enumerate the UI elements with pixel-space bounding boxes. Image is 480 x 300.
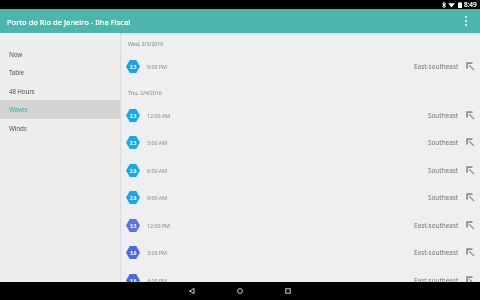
staticText: 3.3	[130, 223, 137, 229]
button[interactable]: 2.6	[120, 184, 480, 211]
staticText: 2.3	[130, 113, 137, 119]
staticText: 4:00 PM	[147, 277, 167, 282]
staticText: Now	[9, 50, 23, 59]
staticText: Southeast	[428, 193, 459, 202]
button[interactable]: Back	[168, 282, 216, 300]
staticText: 2.6	[130, 168, 137, 174]
staticText: East-southeast	[414, 248, 459, 257]
button[interactable]: Home	[216, 282, 264, 300]
button[interactable]: Recent apps	[264, 282, 312, 300]
other: Wave direction	[466, 221, 475, 230]
button[interactable]: Waves	[0, 100, 120, 119]
staticText: 48 Hours	[9, 87, 35, 96]
staticText: 8:49	[464, 0, 477, 9]
button[interactable]: 2.6	[120, 157, 480, 184]
other: Wave direction	[466, 138, 475, 147]
staticText: Southeast	[428, 138, 459, 147]
staticText: Wed, 2/3/2016	[128, 40, 164, 47]
staticText: 12:00 AM	[147, 112, 171, 119]
staticText: 3:00 PM	[147, 249, 167, 256]
button[interactable]: Now	[0, 45, 120, 63]
other: Wave direction	[466, 111, 475, 120]
button[interactable]: 3.3	[120, 212, 480, 239]
staticText: Winds	[9, 124, 27, 133]
staticText: 3:00 AM	[147, 139, 168, 146]
other: Wave direction	[466, 166, 475, 175]
button[interactable]: 48 Hours	[0, 82, 120, 100]
button[interactable]: Table	[0, 63, 120, 82]
button[interactable]: More options	[452, 9, 480, 33]
staticText: East-southeast	[414, 276, 459, 282]
staticText: 9:00 AM	[147, 194, 168, 201]
other: Wave direction	[466, 62, 475, 71]
staticText: 3.6	[130, 250, 137, 256]
staticText: 6:00 AM	[147, 167, 168, 174]
button[interactable]: 3.6	[120, 267, 480, 282]
button[interactable]: 2.3	[120, 53, 480, 80]
staticText: Southeast	[428, 111, 459, 120]
staticText: Southeast	[428, 166, 459, 175]
other: Wave direction	[466, 276, 475, 282]
staticText: Porto do Rio de Janeiro - Ilha Fiscal	[7, 17, 131, 27]
staticText: East-southeast	[414, 221, 459, 230]
staticText: Table	[9, 68, 24, 77]
other: Wave direction	[466, 248, 475, 257]
staticText: 9:00 PM	[147, 63, 167, 70]
other: Wave direction	[466, 193, 475, 202]
staticText: 3.6	[130, 278, 137, 282]
staticText: 2.6	[130, 195, 137, 201]
staticText: Thu, 2/4/2016	[128, 89, 162, 96]
button[interactable]: 3.6	[120, 239, 480, 266]
button[interactable]: 2.3	[120, 129, 480, 156]
staticText: East-southeast	[414, 62, 459, 71]
staticText: Waves	[9, 105, 28, 114]
button[interactable]: Winds	[0, 119, 120, 137]
staticText: 2.3	[130, 140, 137, 146]
staticText: 2.3	[130, 64, 137, 70]
button[interactable]: 2.3	[120, 102, 480, 129]
staticText: 12:00 PM	[147, 222, 170, 229]
